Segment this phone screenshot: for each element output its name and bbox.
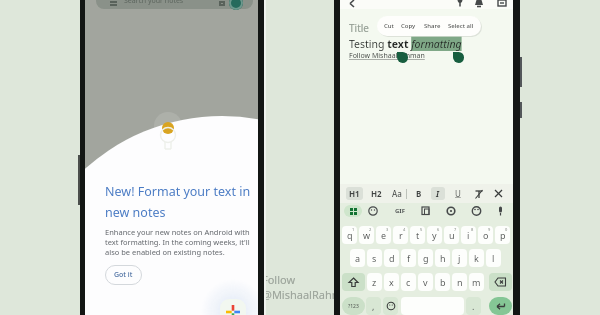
button[interactable]: u xyxy=(444,226,459,244)
staticText: 4 xyxy=(403,227,406,232)
button[interactable]: Search your notes xyxy=(96,0,253,9)
button[interactable]: z xyxy=(367,273,382,291)
staticText: a xyxy=(355,252,361,264)
staticText: x xyxy=(389,276,394,288)
staticText: 7 xyxy=(454,227,457,232)
staticText: Testing text formatting xyxy=(349,37,462,51)
staticText: Follow MishaalRahman xyxy=(349,51,425,61)
staticText: b xyxy=(440,276,446,288)
button[interactable] xyxy=(489,273,512,291)
staticText: o xyxy=(483,229,489,241)
button[interactable] xyxy=(492,187,504,200)
staticText: Copy xyxy=(401,22,416,30)
staticText: ?123 xyxy=(348,303,359,310)
staticText: B xyxy=(416,188,422,199)
button[interactable]: n xyxy=(452,273,467,291)
button[interactable] xyxy=(383,297,398,315)
staticText: u xyxy=(449,229,455,241)
staticText: f xyxy=(407,252,411,264)
button[interactable]: h xyxy=(435,249,450,267)
staticText: Select all xyxy=(448,22,474,30)
button[interactable]: t xyxy=(410,226,425,244)
button[interactable]: I xyxy=(431,187,445,200)
button[interactable]: r xyxy=(393,226,408,244)
staticText: c xyxy=(406,276,411,288)
staticText: j xyxy=(458,252,461,264)
staticText: y xyxy=(432,229,437,241)
staticText: 5 xyxy=(420,227,423,232)
staticText: n xyxy=(457,276,463,288)
staticText: Share xyxy=(424,22,441,30)
staticText: s xyxy=(372,252,377,264)
staticText: Title xyxy=(349,21,369,35)
staticText: Enhance your new notes on Android with t… xyxy=(105,227,250,257)
button[interactable]: i xyxy=(461,226,476,244)
staticText: r xyxy=(399,229,403,241)
button[interactable] xyxy=(472,187,485,200)
staticText: d xyxy=(389,252,395,264)
staticText: q xyxy=(347,229,353,241)
staticText: U xyxy=(455,188,461,199)
button[interactable]: v xyxy=(418,273,433,291)
staticText: e xyxy=(381,229,387,241)
staticText: g xyxy=(423,252,429,264)
button[interactable]: , xyxy=(366,297,381,315)
button[interactable]: p xyxy=(495,226,510,244)
staticText: 2 xyxy=(369,227,372,232)
staticText: Cut xyxy=(384,22,394,30)
button[interactable] xyxy=(220,299,246,315)
staticText: Search your notes xyxy=(124,0,184,6)
button[interactable]: ?123 xyxy=(342,297,365,315)
button[interactable]: Got it xyxy=(105,265,142,285)
staticText: i xyxy=(467,229,470,241)
button[interactable] xyxy=(489,297,512,315)
button[interactable]: x xyxy=(384,273,399,291)
button[interactable]: j xyxy=(452,249,467,267)
staticText: 0 xyxy=(505,227,508,232)
button[interactable]: y xyxy=(427,226,442,244)
staticText: 9 xyxy=(488,227,491,232)
staticText: @MishaalRahman xyxy=(262,287,356,302)
button[interactable]: l xyxy=(486,249,501,267)
button[interactable]: d xyxy=(384,249,399,267)
staticText: p xyxy=(500,229,506,241)
staticText: Aa xyxy=(392,188,402,199)
staticText: Follow xyxy=(262,272,296,287)
staticText: w xyxy=(363,229,371,241)
button[interactable]: U xyxy=(452,187,464,200)
staticText: GIF xyxy=(395,207,405,215)
button[interactable]: Aa xyxy=(389,187,404,200)
staticText: 8 xyxy=(471,227,474,232)
button[interactable]: q xyxy=(342,226,357,244)
button[interactable]: e xyxy=(376,226,391,244)
staticText: t xyxy=(416,229,420,241)
button[interactable]: k xyxy=(469,249,484,267)
staticText: 1 xyxy=(352,227,355,232)
staticText: 3 xyxy=(386,227,389,232)
button[interactable]: a xyxy=(350,249,365,267)
button[interactable]: c xyxy=(401,273,416,291)
button[interactable]: H2 xyxy=(368,187,385,200)
button[interactable] xyxy=(344,205,362,217)
button[interactable]: . xyxy=(466,297,481,315)
button[interactable]: g xyxy=(418,249,433,267)
button[interactable]: B xyxy=(413,187,425,200)
staticText: 6 xyxy=(437,227,440,232)
button[interactable]: f xyxy=(401,249,416,267)
button[interactable]: H1 xyxy=(346,187,363,200)
button[interactable] xyxy=(342,273,365,291)
staticText: H2 xyxy=(371,188,382,199)
button[interactable]: b xyxy=(435,273,450,291)
staticText: New! Format your text in new notes xyxy=(105,183,251,220)
staticText: l xyxy=(492,252,495,264)
staticText: Got it xyxy=(114,270,133,280)
staticText: m xyxy=(472,276,481,288)
staticText: , xyxy=(372,300,375,312)
staticText: k xyxy=(474,252,479,264)
staticText: H1 xyxy=(349,188,360,199)
button[interactable]: w xyxy=(359,226,374,244)
button[interactable]: m xyxy=(469,273,484,291)
button[interactable]: o xyxy=(478,226,493,244)
button[interactable]: s xyxy=(367,249,382,267)
